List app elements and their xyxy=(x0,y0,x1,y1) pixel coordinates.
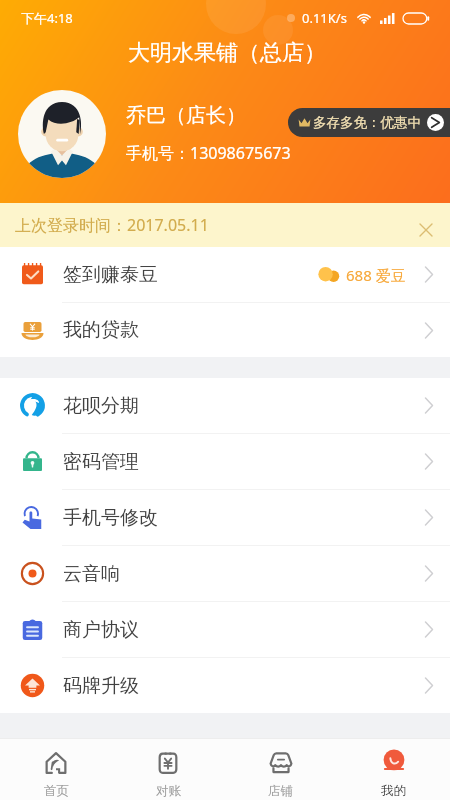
staticText: 688 爱豆 xyxy=(346,265,406,285)
button[interactable]: 手机号修改 xyxy=(0,490,450,545)
staticText: 码牌升级 xyxy=(63,674,139,698)
staticText: 0.11K/s xyxy=(302,9,347,27)
staticText: 手机号修改 xyxy=(63,506,158,530)
button[interactable]: 码牌升级 xyxy=(0,658,450,713)
button[interactable]: 首页 xyxy=(0,741,112,799)
button[interactable]: 密码管理 xyxy=(0,434,450,489)
button[interactable]: 多存多免：优惠中 xyxy=(288,108,450,137)
staticText: 首页 xyxy=(44,783,69,799)
staticText: 乔巴（店长） xyxy=(126,103,246,128)
staticText: 上次登录时间：2017.05.11 xyxy=(15,214,209,236)
staticText: 店铺 xyxy=(268,783,293,799)
staticText: 花呗分期 xyxy=(63,394,139,418)
staticText: 大明水果铺（总店） xyxy=(128,39,326,67)
staticText: 商户协议 xyxy=(63,618,139,642)
staticText: 签到赚泰豆 xyxy=(63,263,158,287)
button[interactable]: 对账 xyxy=(112,741,224,799)
staticText: 云音响 xyxy=(63,562,120,586)
staticText: 密码管理 xyxy=(63,450,139,474)
button[interactable]: 我的 xyxy=(337,741,450,799)
staticText: 多存多免：优惠中 xyxy=(313,114,421,131)
button[interactable]: 云音响 xyxy=(0,546,450,601)
button[interactable]: 关闭 xyxy=(410,209,442,241)
button[interactable]: 我的贷款 xyxy=(0,303,450,357)
staticText: 我的贷款 xyxy=(63,318,139,342)
staticText: 下午4:18 xyxy=(21,9,73,27)
button[interactable]: 花呗分期 xyxy=(0,378,450,433)
staticText: 对账 xyxy=(156,783,181,799)
button[interactable]: 商户协议 xyxy=(0,602,450,657)
staticText: 手机号：13098675673 xyxy=(126,142,291,164)
staticText: 我的 xyxy=(381,783,406,799)
button[interactable]: 签到赚泰豆 xyxy=(0,247,450,302)
button[interactable]: 店铺 xyxy=(224,741,337,799)
